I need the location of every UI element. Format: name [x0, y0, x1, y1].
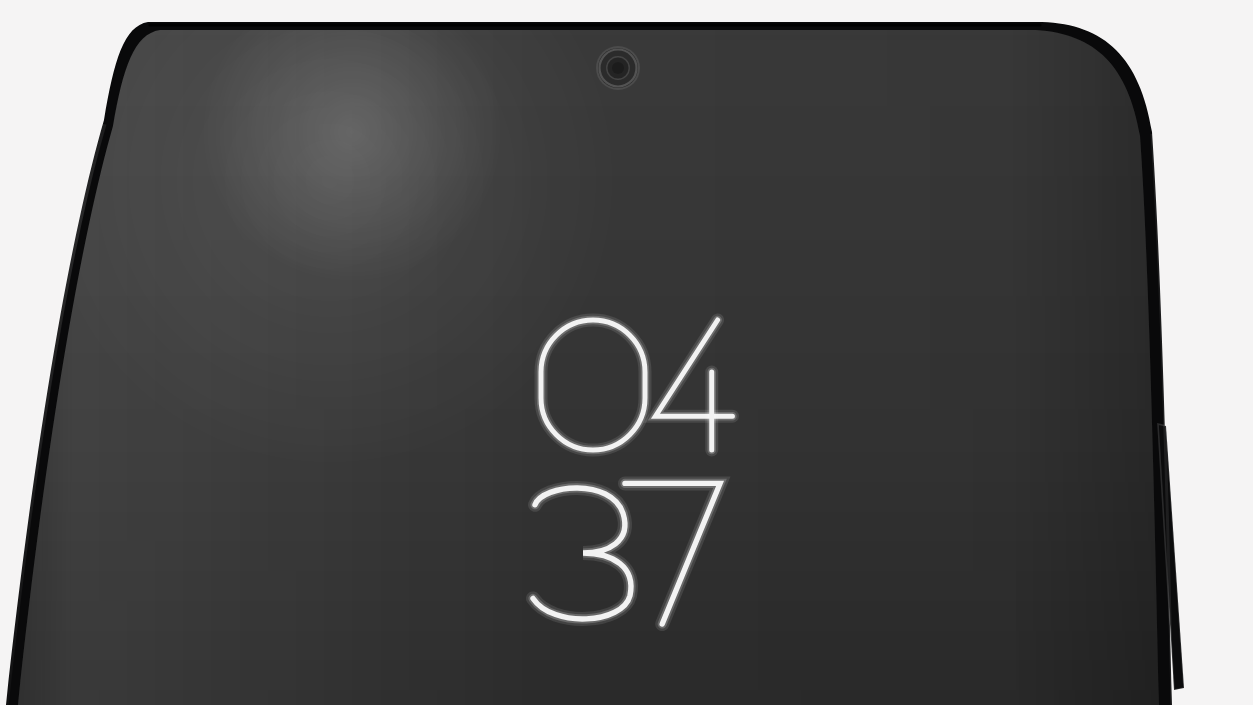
- button[interactable]: Always-on display clock showing 04:37: [0, 0, 1253, 705]
